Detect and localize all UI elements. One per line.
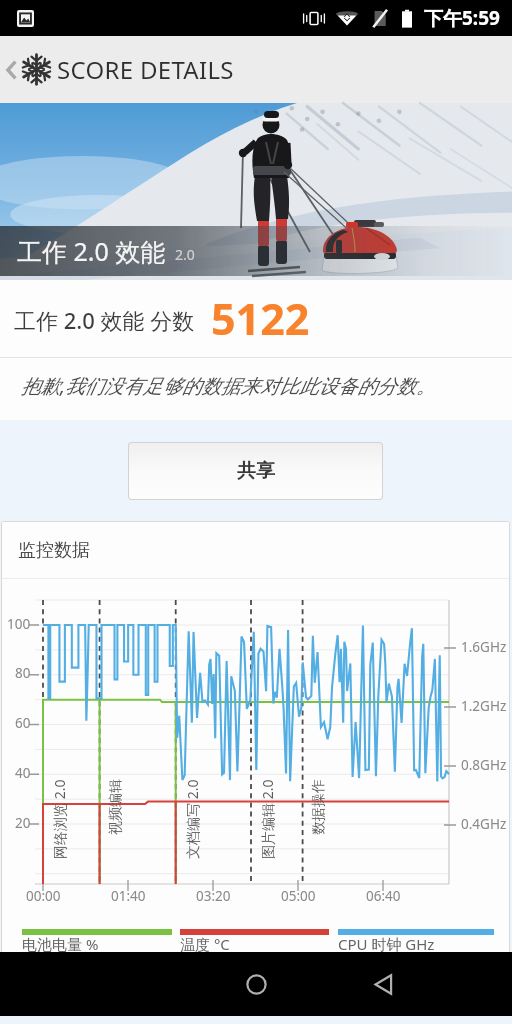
staticText: 20 <box>15 814 31 832</box>
staticText: SCORE DETAILS <box>57 53 234 86</box>
staticText: 0.4GHz <box>461 815 507 833</box>
staticText: 工作 2.0 效能 分数 <box>14 305 195 335</box>
staticText: CPU 时钟 GHz <box>338 934 435 952</box>
staticText: 2.0 <box>175 245 195 264</box>
staticText: 温度 °C <box>180 934 230 952</box>
staticText: 网络浏览 2.0 <box>50 779 68 859</box>
staticText: 06:40 <box>366 887 401 905</box>
other: Screenshot <box>17 10 34 27</box>
staticText: 60 <box>15 714 31 732</box>
button[interactable]: 共享 <box>129 443 382 499</box>
staticText: 100 <box>7 615 31 633</box>
staticText: 视频编辑 <box>107 779 125 835</box>
staticText: 下午5:59 <box>424 5 500 31</box>
staticText: 电池电量 % <box>22 934 99 952</box>
staticText: 01:40 <box>111 887 146 905</box>
staticText: 5122 <box>211 289 310 348</box>
staticText: 1.6GHz <box>461 638 507 656</box>
staticText: 共享 <box>237 459 275 483</box>
staticText: 0.8GHz <box>461 756 507 774</box>
button[interactable]: Back <box>360 961 406 1007</box>
staticText: 数据操作 <box>310 779 328 835</box>
staticText: 80 <box>15 664 31 682</box>
button[interactable]: Navigate up <box>0 45 59 94</box>
staticText: 1.2GHz <box>461 697 507 715</box>
staticText: 文档编写 2.0 <box>183 779 201 859</box>
button[interactable]: Home <box>233 961 279 1007</box>
staticText: 工作 2.0 效能 <box>17 234 166 268</box>
staticText: 03:20 <box>196 887 231 905</box>
staticText: 监控数据 <box>18 539 90 562</box>
staticText: 00:00 <box>26 887 61 905</box>
staticText: 40 <box>15 764 31 782</box>
staticText: 图片编辑 2.0 <box>258 779 276 859</box>
staticText: 05:00 <box>281 887 316 905</box>
staticText: 抱歉,我们没有足够的数据来对比此设备的分数。 <box>21 372 436 399</box>
